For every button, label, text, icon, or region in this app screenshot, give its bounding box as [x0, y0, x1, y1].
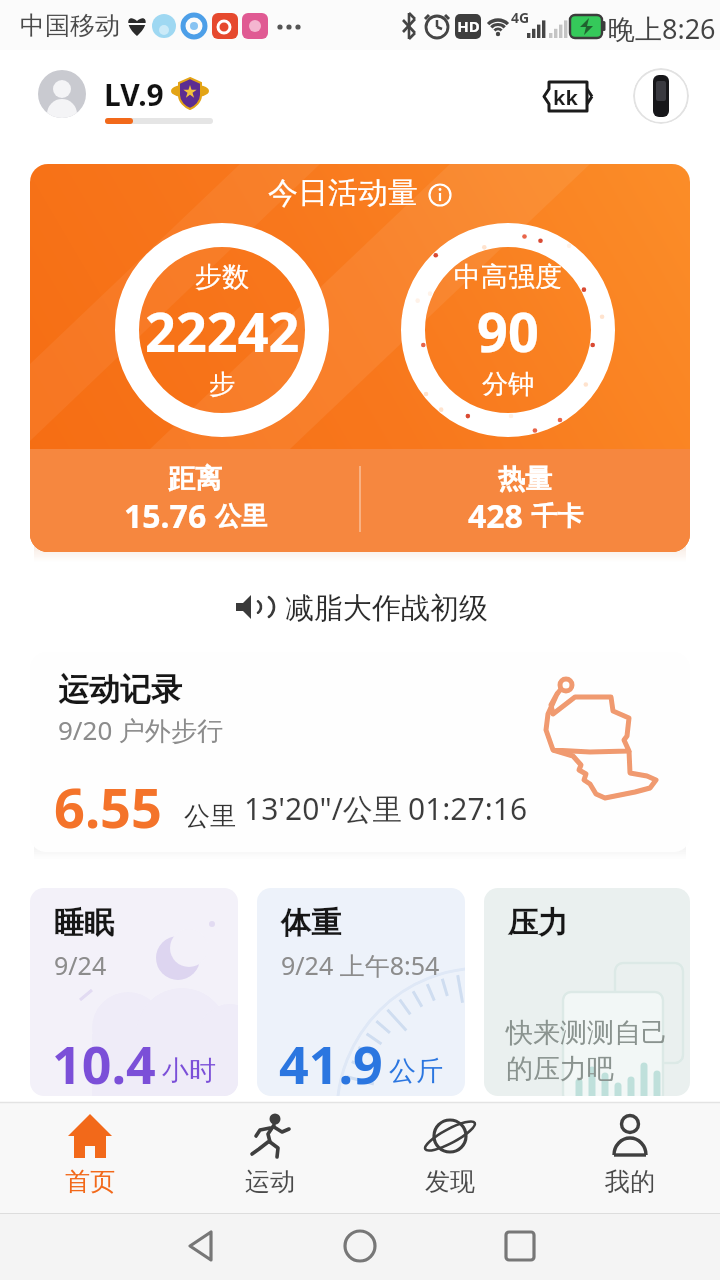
staticText: 首页	[0, 1166, 180, 1197]
staticText: 6.55	[54, 770, 162, 844]
staticText: 分钟	[482, 368, 534, 400]
staticText: 10.4	[52, 1028, 156, 1096]
button[interactable]: 发现	[360, 1102, 540, 1213]
button[interactable]: 今日活动量	[30, 164, 690, 552]
staticText: 快来测测自己	[506, 1016, 668, 1050]
staticText: 4G	[511, 8, 530, 27]
button[interactable]: 压力	[484, 888, 690, 1096]
button[interactable]: 体重	[257, 888, 465, 1096]
staticText: 9/24 上午8:54	[281, 948, 440, 982]
staticText: 9/20 户外步行	[58, 712, 224, 748]
staticText: 90	[477, 294, 539, 368]
button[interactable]	[38, 70, 86, 118]
staticText: 晚上8:26	[608, 10, 716, 47]
staticText: 距离	[30, 462, 360, 496]
button[interactable]: 首页	[0, 1102, 180, 1213]
staticText: 13'20"/公里	[244, 788, 403, 829]
button[interactable]: 减脂大作战初级	[0, 586, 720, 630]
staticText: 9/24	[54, 948, 107, 982]
staticText: 运动记录	[58, 670, 182, 709]
staticText: 中国移动	[20, 10, 120, 41]
staticText: 小时	[162, 1054, 216, 1088]
button[interactable]: kk	[541, 80, 595, 114]
staticText: 发现	[360, 1166, 540, 1197]
staticText: 运动	[180, 1166, 360, 1197]
staticText: 步	[209, 368, 235, 400]
staticText: kk	[553, 84, 578, 111]
button[interactable]	[240, 1213, 480, 1280]
staticText: 体重	[281, 904, 341, 942]
staticText: 睡眠	[54, 904, 114, 942]
staticText: 热量	[360, 462, 690, 496]
staticText: 步数	[195, 260, 249, 294]
staticText: 今日活动量	[268, 174, 418, 212]
staticText: 公斤	[389, 1054, 443, 1088]
staticText: 22242	[145, 294, 300, 368]
staticText: 减脂大作战初级	[285, 590, 488, 627]
button[interactable]: 运动	[180, 1102, 360, 1213]
staticText: HD	[456, 16, 481, 36]
staticText: 01:27:16	[408, 788, 528, 829]
staticText: 千卡	[531, 500, 583, 533]
staticText: 15.76	[124, 494, 207, 538]
button[interactable]: 睡眠	[30, 888, 238, 1096]
staticText: LV.9	[104, 74, 164, 115]
button[interactable]: 我的	[540, 1102, 720, 1213]
staticText: 41.9	[279, 1028, 383, 1096]
staticText: 我的	[540, 1166, 720, 1197]
button[interactable]	[0, 1213, 240, 1280]
staticText: 中高强度	[454, 260, 562, 294]
button[interactable]	[633, 68, 689, 124]
staticText: 压力	[508, 904, 568, 942]
button[interactable]	[480, 1213, 720, 1280]
button[interactable]: 运动记录	[30, 652, 690, 852]
staticText: 公里	[184, 800, 236, 833]
staticText: 428	[468, 494, 523, 538]
staticText: 公里	[215, 500, 267, 533]
staticText: 的压力吧	[506, 1052, 614, 1086]
